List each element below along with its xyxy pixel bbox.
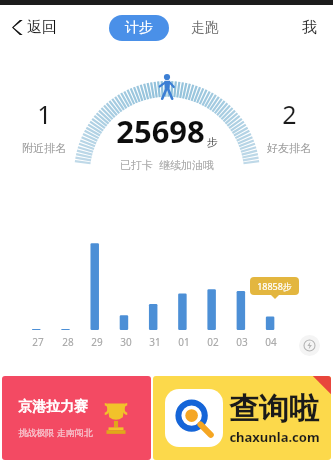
staticText: 31 bbox=[149, 335, 161, 349]
staticText: 走跑 bbox=[191, 19, 219, 37]
staticText: 附近排名 bbox=[22, 141, 66, 155]
staticText: 1 bbox=[37, 97, 52, 131]
staticText: 查询啦 bbox=[229, 390, 319, 428]
staticText: 好友排名 bbox=[267, 141, 311, 155]
staticText: 29 bbox=[91, 335, 103, 349]
staticText: 03 bbox=[236, 335, 248, 349]
staticText: 继续加油哦 bbox=[159, 158, 214, 172]
staticText: 28 bbox=[62, 335, 74, 349]
staticText: 30 bbox=[120, 335, 132, 349]
button[interactable]: 查询啦 bbox=[153, 376, 331, 460]
staticText: 已打卡 bbox=[120, 158, 153, 172]
button[interactable]: 我 bbox=[296, 14, 323, 41]
button[interactable]: 1 bbox=[22, 97, 66, 155]
staticText: 挑战极限 走南闯北 bbox=[18, 426, 93, 438]
staticText: chaxunla.com bbox=[229, 428, 320, 446]
staticText: 京港拉力赛 bbox=[18, 398, 88, 416]
staticText: 我 bbox=[302, 18, 317, 37]
staticText: 计步 bbox=[125, 19, 153, 37]
button[interactable]: Sync steps bbox=[299, 335, 320, 356]
button[interactable]: 走跑 bbox=[185, 15, 225, 41]
button[interactable]: 2 bbox=[267, 97, 311, 155]
staticText: 27 bbox=[32, 335, 44, 349]
staticText: 2 bbox=[282, 97, 297, 131]
staticText: 步 bbox=[207, 135, 218, 149]
staticText: 04 bbox=[265, 335, 277, 349]
button[interactable]: 计步 bbox=[109, 15, 169, 41]
staticText: 25698 bbox=[116, 110, 205, 152]
staticText: 返回 bbox=[27, 18, 57, 37]
button[interactable]: 18858步 bbox=[250, 277, 299, 295]
button[interactable]: 京港拉力赛 bbox=[2, 376, 151, 460]
staticText: 18858步 bbox=[257, 280, 292, 292]
button[interactable]: 返回 bbox=[8, 14, 61, 41]
staticText: 01 bbox=[178, 335, 190, 349]
staticText: 02 bbox=[207, 335, 219, 349]
